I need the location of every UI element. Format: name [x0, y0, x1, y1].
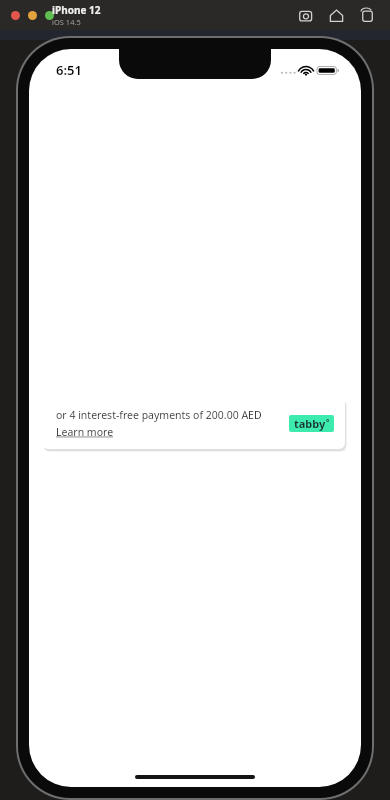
button[interactable]: Minimize	[28, 11, 37, 20]
button[interactable]: Learn more	[56, 425, 114, 439]
other: tabby	[289, 415, 334, 432]
staticText: iOS 14.5	[52, 17, 81, 27]
button[interactable]: Zoom	[45, 11, 54, 20]
button[interactable]: Screenshot	[297, 7, 314, 24]
staticText: iPhone 12	[52, 3, 101, 17]
staticText: tabby	[294, 416, 326, 431]
button[interactable]: or 4 interest-free payments of 200.00 AE…	[42, 397, 345, 449]
button[interactable]: Rotate	[359, 7, 376, 24]
staticText: °	[326, 416, 330, 427]
button[interactable]: Close	[11, 11, 20, 20]
staticText: or 4 interest-free payments of 200.00 AE…	[56, 408, 262, 422]
button[interactable]: Home	[328, 7, 345, 24]
staticText: 6:51	[56, 61, 82, 79]
